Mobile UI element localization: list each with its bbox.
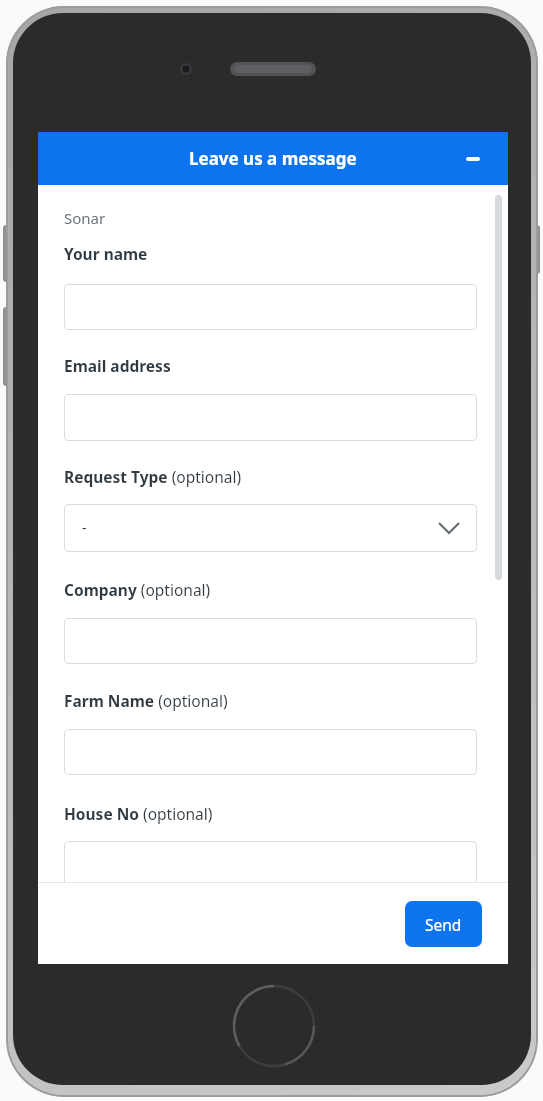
staticText: House No (optional): [64, 803, 213, 824]
staticText: Farm Name (optional): [64, 690, 228, 711]
button[interactable]: -: [64, 504, 477, 552]
staticText: Company (optional): [64, 579, 211, 600]
button[interactable]: [64, 394, 477, 441]
staticText: Email address: [64, 355, 171, 376]
staticText: Request Type (optional): [64, 466, 242, 487]
button[interactable]: [64, 841, 477, 887]
staticText: Leave us a message: [189, 147, 357, 170]
button[interactable]: [64, 284, 477, 330]
staticText: -: [82, 518, 87, 537]
button[interactable]: [64, 729, 477, 775]
button[interactable]: Send: [405, 901, 482, 947]
button[interactable]: [466, 157, 480, 161]
button[interactable]: [64, 618, 477, 664]
staticText: Your name: [64, 243, 148, 264]
staticText: Sonar: [64, 208, 106, 228]
staticText: Send: [425, 914, 462, 935]
